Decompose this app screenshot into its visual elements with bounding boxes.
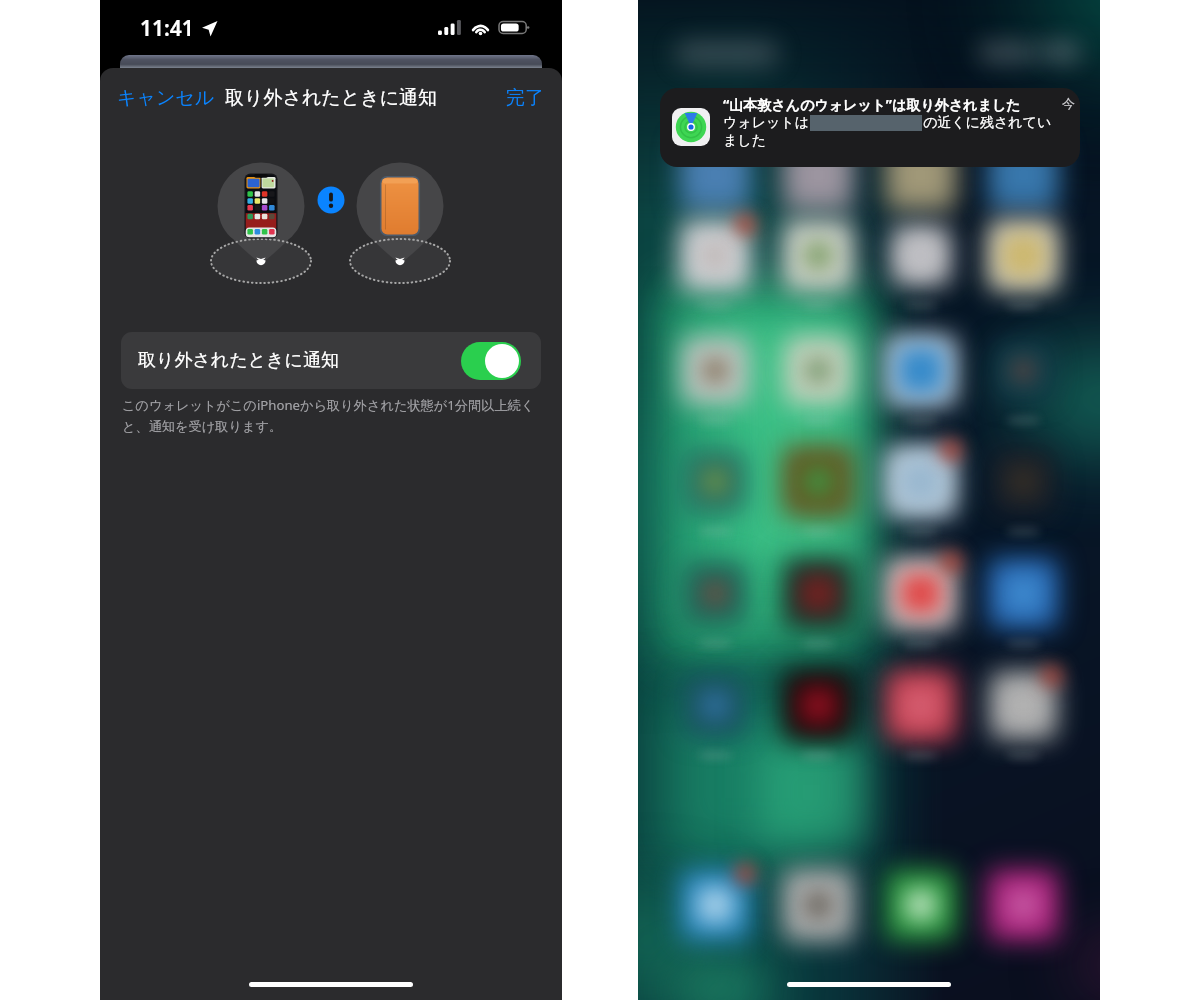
staticText: このウォレットがこのiPhoneから取り外された状態が1分間以上続くと、通知を受… xyxy=(122,396,548,435)
staticText: キャンセル xyxy=(117,86,215,110)
staticText: 11:41 xyxy=(140,14,194,43)
staticText: の近くに残されてい xyxy=(923,114,1052,132)
staticText: 今 xyxy=(1062,95,1075,111)
button[interactable]: キャンセル xyxy=(100,79,223,117)
button[interactable]: 取り外されたときに通知 xyxy=(121,332,541,389)
staticText: 取り外されたときに通知 xyxy=(138,349,339,372)
staticText: 取り外されたときに通知 xyxy=(225,86,438,110)
staticText: 完了 xyxy=(506,86,544,110)
staticText: ました xyxy=(723,132,766,150)
staticText: ウォレットは xyxy=(723,114,809,132)
button[interactable]: 完了 xyxy=(498,79,562,117)
button[interactable]: “山本敦さんのウォレット”は取り外されました xyxy=(660,88,1080,167)
staticText: “山本敦さんのウォレット”は取り外されました xyxy=(723,95,1021,114)
